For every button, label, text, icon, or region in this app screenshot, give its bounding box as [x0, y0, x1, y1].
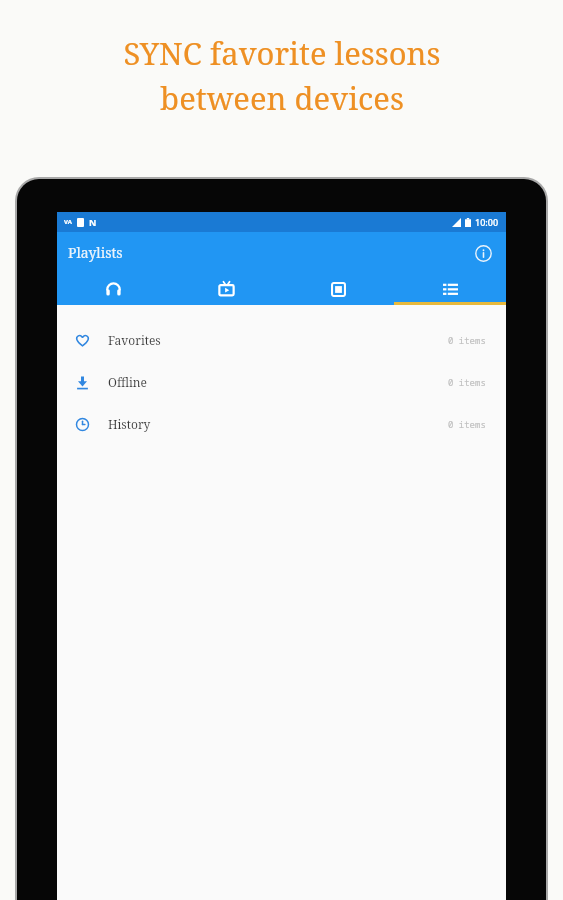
button[interactable]: History [57, 403, 506, 445]
staticText: History [108, 416, 151, 432]
button[interactable]: Offline [57, 361, 506, 403]
staticText: 0 items [448, 376, 486, 388]
staticText: SYNC favorite lessons [123, 32, 441, 74]
staticText: 0 items [448, 418, 486, 430]
button[interactable]: Audio [57, 273, 170, 305]
staticText: N [89, 216, 97, 228]
staticText: 0 items [448, 334, 486, 346]
button[interactable]: Favorites [57, 319, 506, 361]
button[interactable]: Books [282, 273, 394, 305]
button[interactable]: Info [468, 238, 498, 268]
staticText: between devices [160, 77, 404, 119]
staticText: 10:00 [475, 216, 499, 228]
staticText: VA [64, 218, 72, 226]
staticText: Playlists [68, 243, 123, 262]
staticText: Offline [108, 374, 147, 390]
button[interactable]: Video [170, 273, 282, 305]
staticText: Favorites [108, 332, 161, 348]
button[interactable]: Playlists [394, 273, 506, 305]
